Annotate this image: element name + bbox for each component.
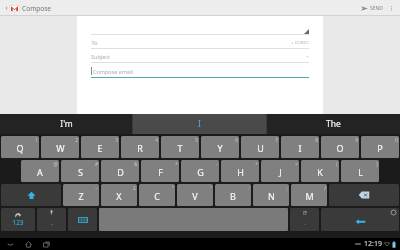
staticText: W xyxy=(56,142,65,154)
staticText: R xyxy=(137,142,143,154)
staticText: + CC/BCC xyxy=(291,40,309,45)
staticText: ─ xyxy=(306,54,309,59)
button[interactable]: G xyxy=(181,160,219,182)
staticText: I xyxy=(198,118,201,130)
button[interactable]: R xyxy=(121,136,159,158)
staticText: I'm xyxy=(60,118,73,130)
staticText: = xyxy=(295,161,298,167)
button[interactable]: Home xyxy=(22,238,35,250)
button[interactable]: D xyxy=(101,160,139,182)
staticText: V xyxy=(192,190,198,202)
staticText: The xyxy=(326,118,341,130)
button[interactable]: P xyxy=(361,136,399,158)
staticText: K xyxy=(317,166,323,178)
button[interactable] xyxy=(91,23,309,35)
button[interactable]: B xyxy=(215,184,251,206)
button[interactable]: H xyxy=(221,160,259,182)
button[interactable]: C xyxy=(139,184,175,206)
button[interactable]: Compose email xyxy=(91,63,309,78)
button[interactable]: T xyxy=(161,136,199,158)
staticText: + xyxy=(255,161,258,167)
staticText: L xyxy=(358,166,363,178)
button[interactable]: Z xyxy=(63,184,99,206)
staticText: T xyxy=(177,142,183,154)
button[interactable]: More options xyxy=(386,3,397,14)
staticText: - xyxy=(216,161,218,167)
button[interactable]: Period and symbols xyxy=(290,208,319,231)
button[interactable]: F xyxy=(141,160,179,182)
button[interactable]: A xyxy=(21,160,59,182)
button[interactable]: L xyxy=(341,160,379,182)
button[interactable]: K xyxy=(301,160,339,182)
staticText: SEND xyxy=(370,5,383,12)
staticText: I xyxy=(298,142,302,154)
staticText: 9 xyxy=(355,137,358,143)
staticText: To xyxy=(91,39,98,46)
staticText: 12:19 xyxy=(364,239,382,249)
staticText: : xyxy=(248,185,250,191)
staticText: * xyxy=(175,161,178,167)
staticText: J xyxy=(279,166,282,178)
button[interactable]: Recent apps xyxy=(40,238,53,250)
staticText: " xyxy=(172,185,174,191)
staticText: 2 xyxy=(75,137,78,143)
staticText: ( xyxy=(336,161,338,167)
button[interactable]: O xyxy=(321,136,359,158)
button[interactable]: J xyxy=(261,160,299,182)
button[interactable]: Y xyxy=(201,136,239,158)
button[interactable]: Switch keyboard xyxy=(68,208,97,231)
button[interactable]: S xyxy=(61,160,99,182)
button[interactable]: M xyxy=(291,184,327,206)
button[interactable]: The xyxy=(267,114,400,134)
staticText: 6 xyxy=(235,137,238,143)
staticText: !? xyxy=(303,210,307,217)
button[interactable]: SEND xyxy=(358,3,386,14)
staticText: A xyxy=(37,166,43,178)
button[interactable]: 12:19 xyxy=(355,239,396,249)
staticText: Compose email xyxy=(93,68,133,75)
staticText: X xyxy=(116,190,122,202)
button[interactable]: U xyxy=(241,136,279,158)
button[interactable]: Backspace xyxy=(329,184,399,206)
button[interactable]: E xyxy=(81,136,119,158)
button[interactable]: Shift xyxy=(1,184,61,206)
button[interactable]: To xyxy=(91,35,309,49)
staticText: E xyxy=(97,142,103,154)
button[interactable]: Numbers and symbols xyxy=(1,208,35,231)
staticText: S xyxy=(78,166,83,178)
staticText: Z xyxy=(78,190,84,202)
staticText: # xyxy=(95,161,98,167)
staticText: U xyxy=(257,142,264,154)
staticText: Compose xyxy=(22,4,51,13)
staticText: 5 xyxy=(195,137,198,143)
button[interactable]: ‹ xyxy=(3,3,53,13)
staticText: 8 xyxy=(315,137,318,143)
button[interactable]: Back xyxy=(4,238,17,250)
button[interactable]: I xyxy=(281,136,319,158)
button[interactable]: Q xyxy=(1,136,39,158)
staticText: ; xyxy=(286,185,288,191)
staticText: F xyxy=(158,166,163,178)
staticText: D xyxy=(117,166,124,178)
staticText: . xyxy=(304,219,306,227)
staticText: 123 xyxy=(12,218,24,227)
staticText: P xyxy=(377,142,383,154)
button[interactable]: N xyxy=(253,184,289,206)
button[interactable]: Comma and voice input xyxy=(37,208,66,231)
button[interactable]: W xyxy=(41,136,79,158)
staticText: C xyxy=(154,190,160,202)
staticText: £ xyxy=(133,185,136,191)
staticText: @ xyxy=(53,161,58,167)
button[interactable]: Enter xyxy=(321,208,399,231)
staticText: M xyxy=(305,190,314,202)
button[interactable]: I xyxy=(133,114,266,134)
button[interactable]: I'm xyxy=(0,114,132,134)
button[interactable]: X xyxy=(101,184,137,206)
staticText: N xyxy=(268,190,275,202)
button[interactable]: V xyxy=(177,184,213,206)
staticText: 3 xyxy=(115,137,118,143)
staticText: / xyxy=(324,185,326,191)
staticText: , xyxy=(51,219,53,227)
button[interactable]: Subject xyxy=(91,49,309,63)
